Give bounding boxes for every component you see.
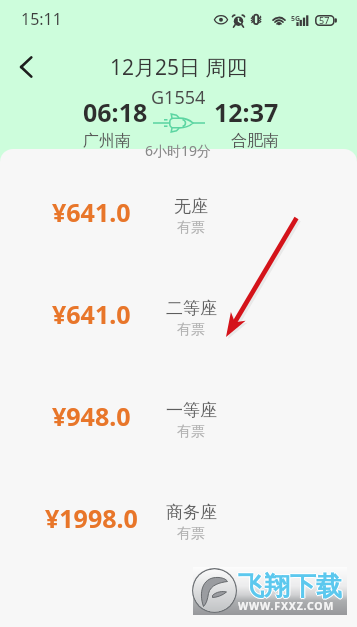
staticText: 06:18 — [83, 95, 148, 129]
staticText: 有票 — [177, 219, 205, 237]
staticText: ¥1998.0 — [45, 501, 138, 535]
button[interactable]: ¥1998.0 — [0, 469, 357, 571]
staticText: 合肥南 — [231, 131, 279, 151]
staticText: 飞翔下载 — [238, 571, 342, 604]
staticText: 有票 — [177, 423, 205, 441]
staticText: ¥948.0 — [52, 399, 131, 433]
staticText: ¥641.0 — [52, 195, 131, 229]
staticText: 飞翔下载 — [239, 570, 343, 603]
staticText: 广州南 — [83, 131, 131, 151]
staticText: ¥641.0 — [52, 297, 131, 331]
staticText: 有票 — [177, 525, 205, 543]
staticText: 12月25日 周四 — [110, 53, 248, 82]
staticText: 飞翔下载 — [237, 570, 341, 603]
staticText: 飞翔下载 — [238, 569, 342, 602]
staticText: 无座 — [174, 196, 208, 217]
staticText: 15:11 — [21, 8, 62, 30]
staticText: WWW.FXXZ.COM — [238, 599, 335, 613]
staticText: 二等座 — [166, 298, 217, 319]
button[interactable]: ¥948.0 — [0, 367, 357, 469]
button[interactable]: ¥641.0 — [0, 265, 357, 367]
button[interactable]: Back — [6, 47, 46, 87]
staticText: 商务座 — [166, 502, 217, 523]
staticText: 一等座 — [166, 400, 217, 421]
staticText: 12:37 — [214, 95, 279, 129]
staticText: 飞翔下载 — [238, 570, 342, 603]
staticText: 6小时19分 — [145, 141, 212, 160]
staticText: 5G — [291, 14, 301, 24]
staticText: G1554 — [151, 85, 206, 110]
staticText: 57 — [319, 14, 330, 26]
button[interactable]: ¥641.0 — [0, 163, 357, 265]
staticText: 有票 — [177, 321, 205, 339]
